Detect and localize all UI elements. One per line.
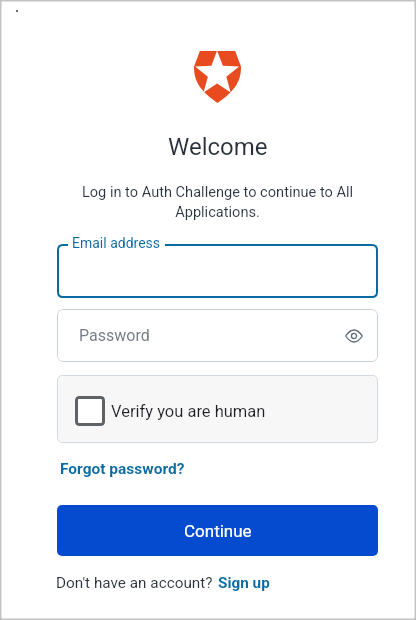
staticText: Email address [72, 235, 161, 251]
button[interactable]: Email address [57, 244, 378, 298]
button[interactable]: Show password [341, 323, 367, 349]
button[interactable]: Password [57, 309, 378, 362]
staticText: Forgot password? [60, 460, 185, 478]
staticText: Verify you are human [111, 402, 266, 421]
staticText: Don't have an account? [56, 574, 213, 592]
button[interactable]: Forgot password? [56, 457, 189, 481]
button[interactable]: Continue [57, 505, 378, 556]
staticText: Continue [184, 521, 252, 541]
button[interactable]: Sign up [218, 574, 270, 592]
staticText: Log in to Auth Challenge to continue to … [57, 183, 378, 220]
button[interactable]: Verify you are human [57, 375, 378, 443]
staticText: Password [79, 326, 150, 345]
staticText: Sign up [218, 574, 270, 592]
staticText: Welcome [168, 133, 268, 161]
